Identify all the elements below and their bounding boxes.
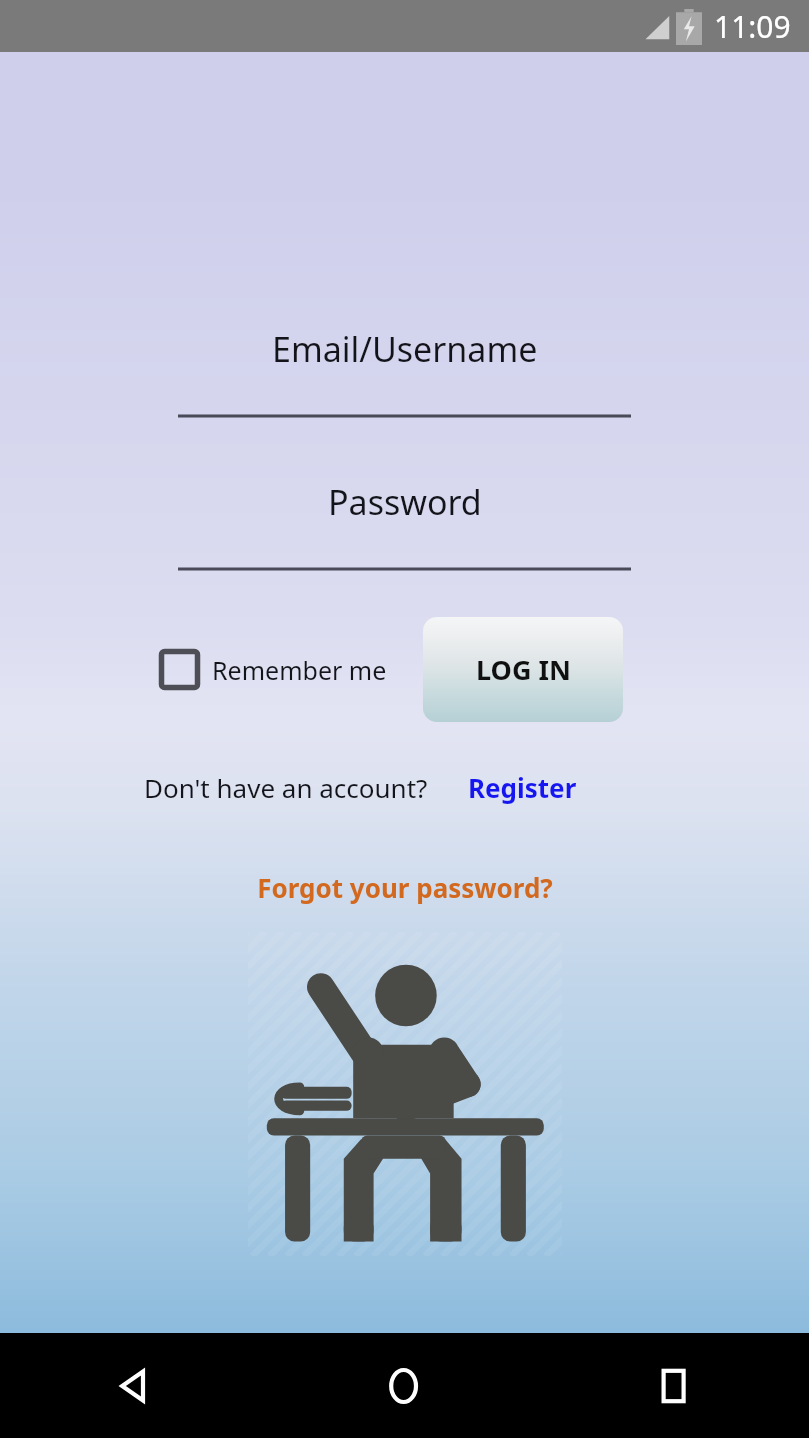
button[interactable]: Forgot your password? [257,870,553,905]
button[interactable]: LOG IN [423,617,623,722]
button[interactable]: Don't have an account? [144,770,428,805]
button[interactable]: Home [269,1333,539,1438]
staticText: 11:09 [714,6,791,47]
button[interactable]: Remember me [159,649,387,690]
button[interactable]: Recent apps [539,1333,809,1438]
staticText: Password [328,479,482,525]
button[interactable]: Register [468,770,577,805]
staticText: Remember me [212,653,387,687]
button[interactable]: Email/Username [178,311,631,418]
staticText: Email/Username [272,326,538,372]
staticText: LOG IN [476,651,571,688]
button[interactable]: Password [178,464,631,571]
button[interactable]: Back [0,1333,269,1438]
